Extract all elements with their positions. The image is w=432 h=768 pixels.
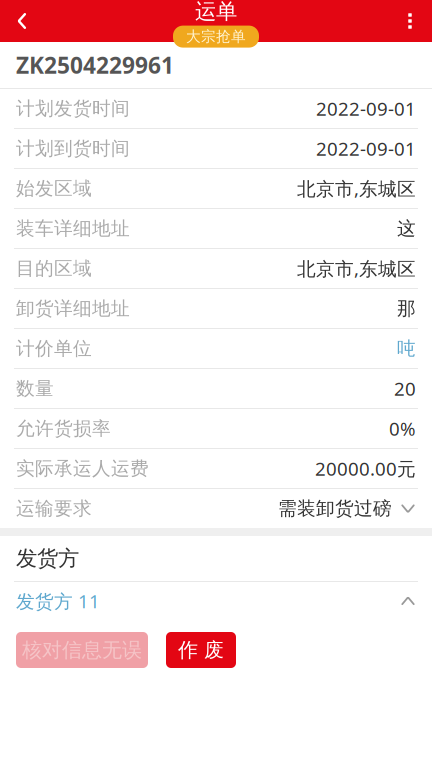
staticText: 20000.00元 <box>315 456 416 481</box>
staticText: 计划发货时间 <box>16 97 130 120</box>
staticText: 北京市,东城区 <box>297 256 416 281</box>
staticText: 计划到货时间 <box>16 137 130 160</box>
staticText: 运单 <box>195 0 237 25</box>
staticText: 计价单位 <box>16 337 92 360</box>
button[interactable]: 发货方 11 <box>0 582 432 620</box>
staticText: 数量 <box>16 377 54 400</box>
staticText: 目的区域 <box>16 257 92 280</box>
button[interactable]: 更多 <box>388 0 432 42</box>
staticText: 吨 <box>397 337 416 360</box>
staticText: 装车详细地址 <box>16 217 130 240</box>
staticText: ZK2504229961 <box>16 50 174 80</box>
staticText: 20 <box>394 376 416 401</box>
staticText: 实际承运人运费 <box>16 457 149 480</box>
staticText: 2022-09-01 <box>316 136 416 161</box>
staticText: 作 废 <box>178 638 224 662</box>
staticText: 那 <box>397 297 416 320</box>
button[interactable]: 作 废 <box>166 632 236 668</box>
staticText: 0% <box>389 416 416 441</box>
button[interactable]: 核对信息无误 <box>16 632 148 668</box>
staticText: 卸货详细地址 <box>16 297 130 320</box>
staticText: 运输要求 <box>16 497 92 520</box>
staticText: 始发区域 <box>16 177 92 200</box>
staticText: 2022-09-01 <box>316 96 416 121</box>
staticText: 允许货损率 <box>16 417 111 440</box>
staticText: 核对信息无误 <box>22 638 142 662</box>
staticText: 需装卸货过磅 <box>278 497 392 520</box>
staticText: 北京市,东城区 <box>297 176 416 201</box>
staticText: 发货方 <box>16 545 79 572</box>
staticText: 大宗抢单 <box>186 28 246 46</box>
staticText: 这 <box>397 217 416 240</box>
staticText: 发货方 11 <box>16 589 100 613</box>
button[interactable]: 返回 <box>0 0 44 42</box>
